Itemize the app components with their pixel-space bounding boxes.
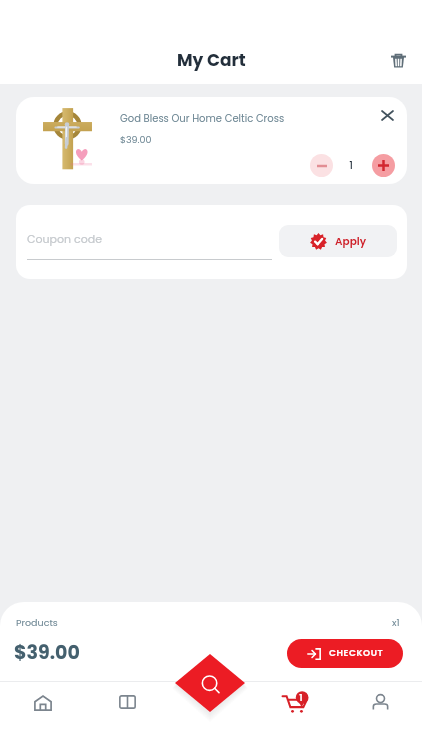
staticText: My Cart [177,48,246,72]
staticText: 1 [341,158,361,173]
button[interactable]: Apply [279,225,397,257]
staticText: $39.00 [14,639,80,666]
staticText: $39.00 [120,133,152,146]
staticText: Apply [335,234,367,249]
staticText: God Bless Our Home Celtic Cross [120,111,285,125]
button[interactable]: Delete all [385,47,411,73]
button[interactable]: CHECKOUT [287,639,403,668]
button[interactable]: Decrease quantity [310,154,333,177]
button[interactable]: Home [23,682,63,750]
button[interactable]: Profile [360,682,400,750]
button[interactable]: Remove item [375,103,399,127]
staticText: 1 [297,692,305,705]
staticText: x1 [392,616,400,629]
button[interactable]: Catalog [107,682,147,750]
button[interactable]: Cart [275,679,315,747]
button[interactable]: Search [175,654,245,712]
staticText: CHECKOUT [329,647,384,660]
staticText: Products [16,616,58,629]
staticText: Coupon code [27,231,102,246]
button[interactable]: God Bless Our Home Celtic Cross [16,97,407,184]
button[interactable]: Increase quantity [372,154,395,177]
